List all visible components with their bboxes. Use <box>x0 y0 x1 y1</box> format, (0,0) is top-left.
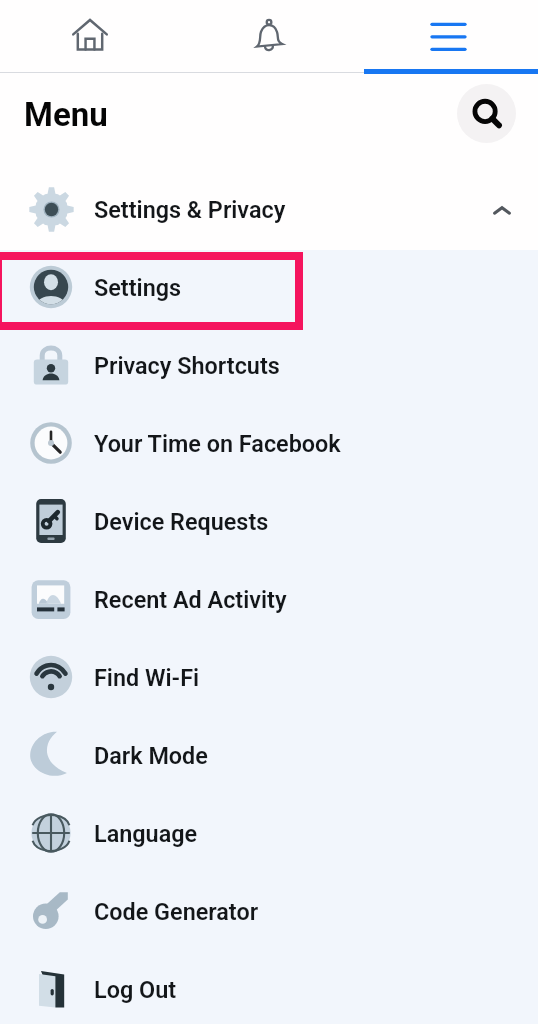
button[interactable]: Dark Mode <box>0 716 538 794</box>
button[interactable]: Language <box>0 794 538 872</box>
button[interactable]: Home <box>0 0 180 72</box>
staticText: Language <box>94 820 198 847</box>
staticText: Settings & Privacy <box>94 196 286 223</box>
staticText: Menu <box>24 95 108 134</box>
button[interactable]: Your Time on Facebook <box>0 404 538 482</box>
button[interactable]: Search <box>457 84 516 143</box>
button[interactable]: Log Out <box>0 950 538 1024</box>
staticText: Device Requests <box>94 508 269 535</box>
button[interactable]: Menu <box>359 0 538 72</box>
button[interactable]: Recent Ad Activity <box>0 560 538 638</box>
button[interactable]: Settings <box>0 248 538 326</box>
staticText: Your Time on Facebook <box>94 430 341 457</box>
staticText: Log Out <box>94 976 177 1003</box>
staticText: Recent Ad Activity <box>94 586 287 613</box>
staticText: Find Wi-Fi <box>94 664 200 691</box>
button[interactable]: Code Generator <box>0 872 538 950</box>
button[interactable]: Privacy Shortcuts <box>0 326 538 404</box>
staticText: Privacy Shortcuts <box>94 352 280 379</box>
button[interactable]: Settings & Privacy <box>0 170 538 248</box>
button[interactable]: Device Requests <box>0 482 538 560</box>
staticText: Code Generator <box>94 898 259 925</box>
button[interactable]: Find Wi-Fi <box>0 638 538 716</box>
button[interactable]: Notifications <box>180 0 359 72</box>
staticText: Settings <box>94 274 182 301</box>
staticText: Dark Mode <box>94 742 208 769</box>
